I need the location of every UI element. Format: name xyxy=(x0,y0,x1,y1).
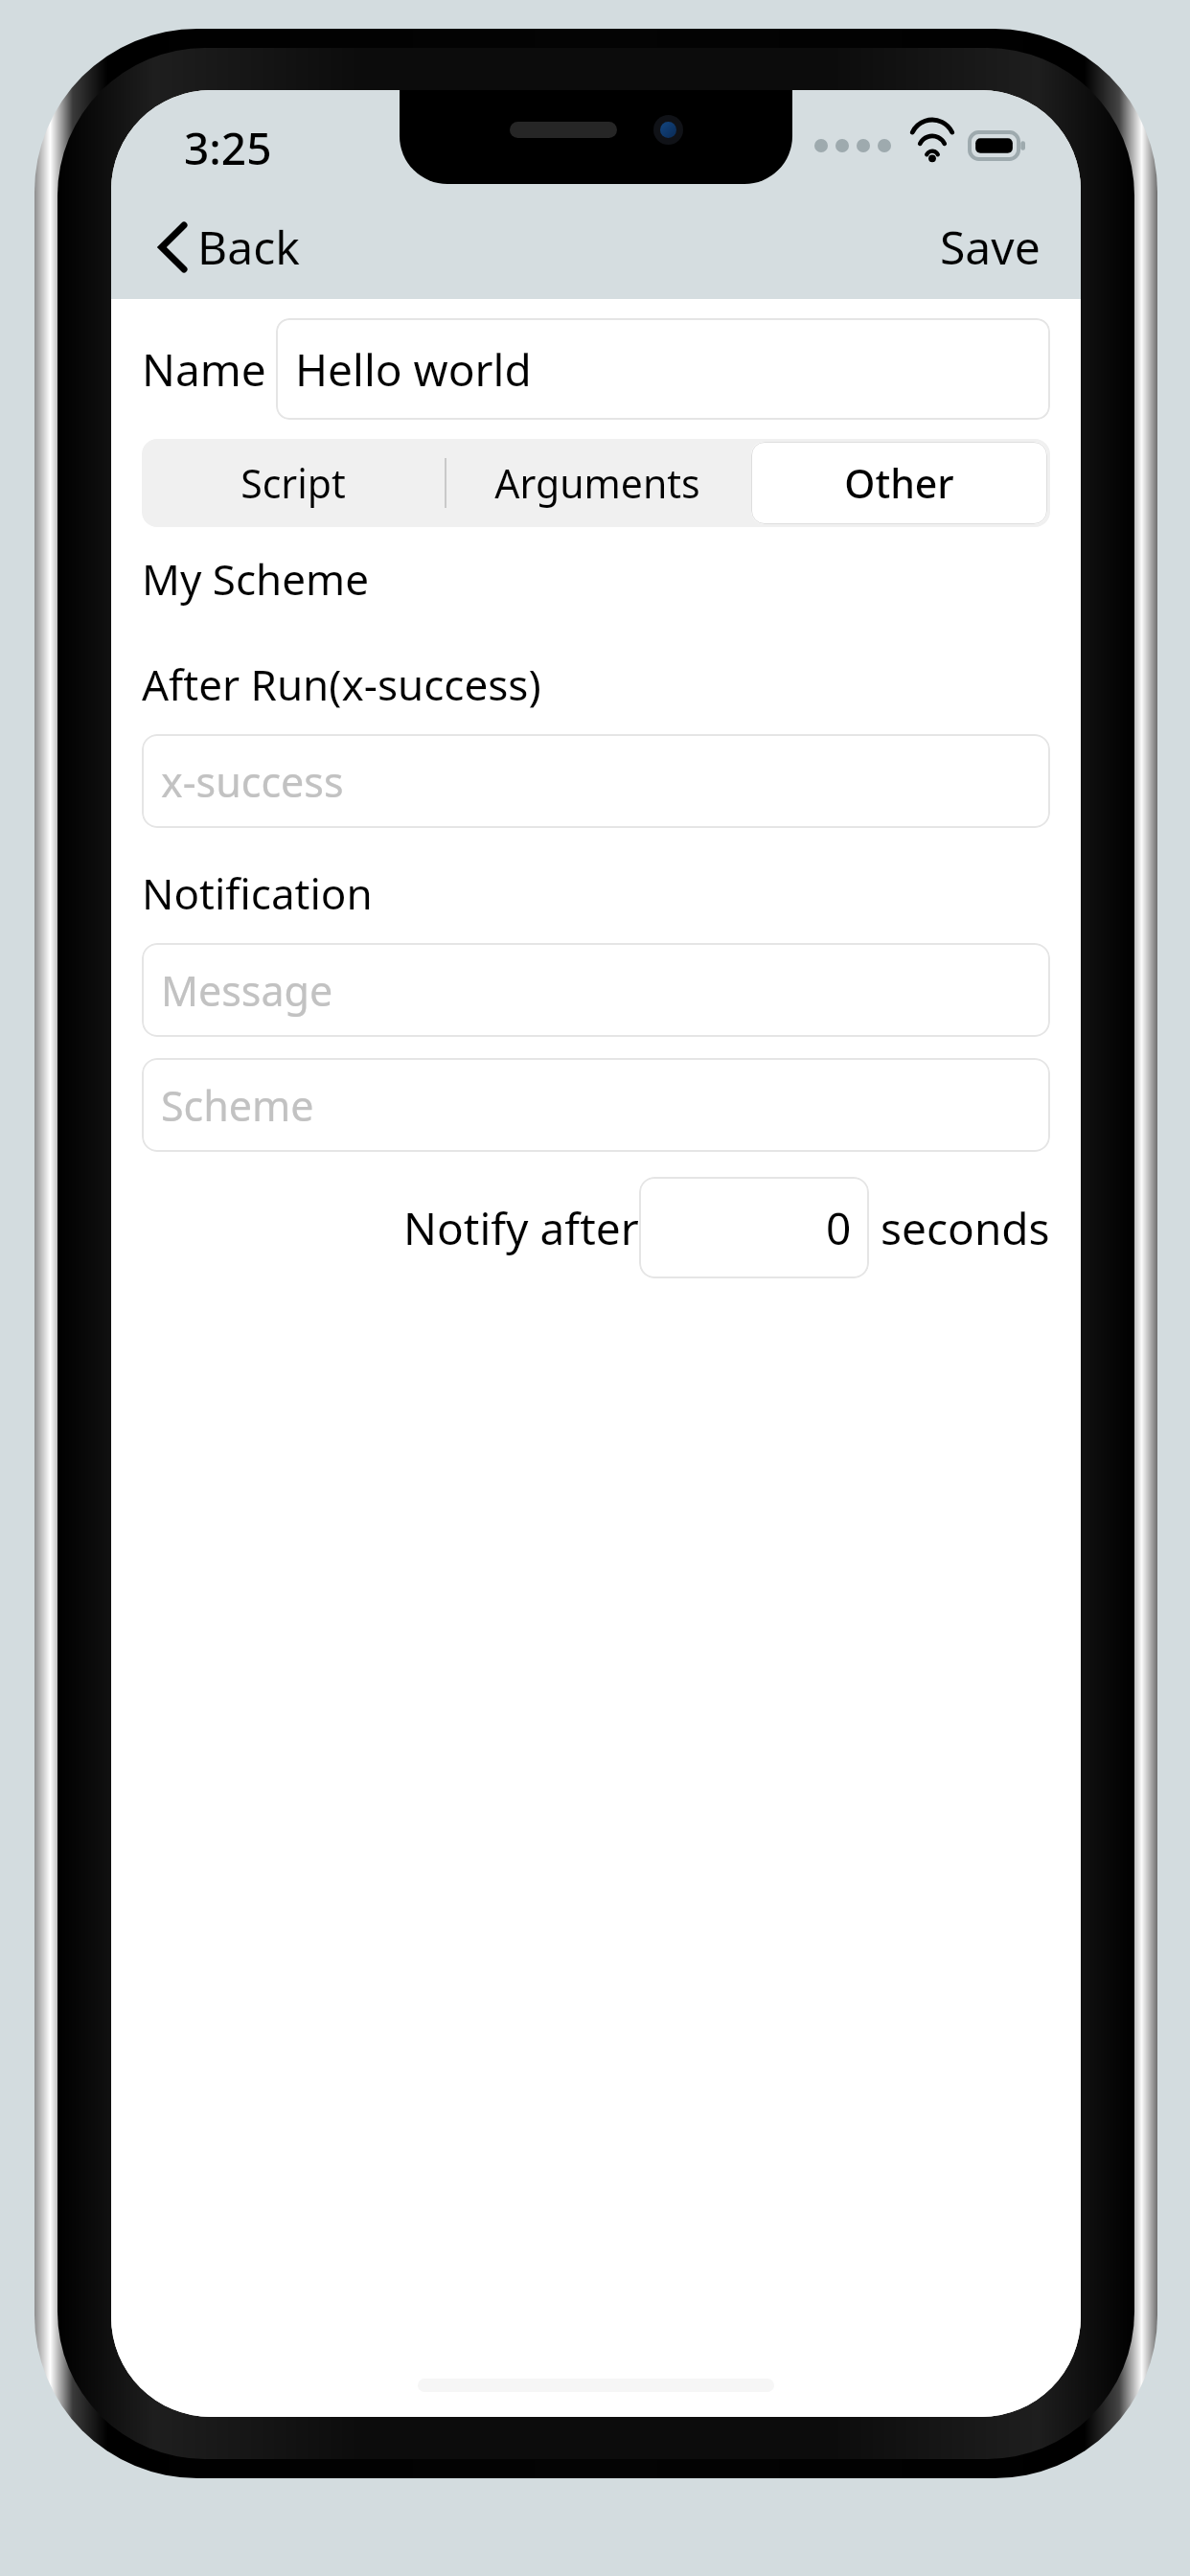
other: Back xyxy=(159,223,186,271)
staticText: Save xyxy=(940,216,1041,278)
button[interactable]: Arguments xyxy=(446,439,748,527)
staticText: Notify after xyxy=(403,1198,639,1258)
button[interactable]: Script xyxy=(142,439,445,527)
button[interactable]: Scheme xyxy=(142,1058,1050,1152)
staticText: Back xyxy=(197,216,300,278)
button[interactable]: Save xyxy=(925,206,1056,287)
staticText: Scheme xyxy=(161,1077,314,1134)
button[interactable]: 0 xyxy=(639,1177,869,1278)
staticText: My Scheme xyxy=(142,550,370,608)
button[interactable]: Other xyxy=(751,442,1047,524)
staticText: Message xyxy=(161,962,333,1019)
staticText: Other xyxy=(844,456,954,510)
button[interactable]: Back xyxy=(144,206,315,287)
staticText: seconds xyxy=(881,1198,1050,1258)
staticText: Hello world xyxy=(295,339,532,400)
staticText: After Run(x-success) xyxy=(142,655,541,713)
staticText: 0 xyxy=(826,1198,852,1258)
staticText: Notification xyxy=(142,864,373,922)
staticText: 3:25 xyxy=(184,118,272,178)
button[interactable]: x-success xyxy=(142,734,1050,828)
staticText: Name xyxy=(142,339,266,400)
button[interactable]: Message xyxy=(142,943,1050,1037)
staticText: Arguments xyxy=(494,456,700,510)
staticText: x-success xyxy=(161,753,344,810)
staticText: Script xyxy=(240,456,346,510)
button[interactable]: Hello world xyxy=(276,318,1050,420)
